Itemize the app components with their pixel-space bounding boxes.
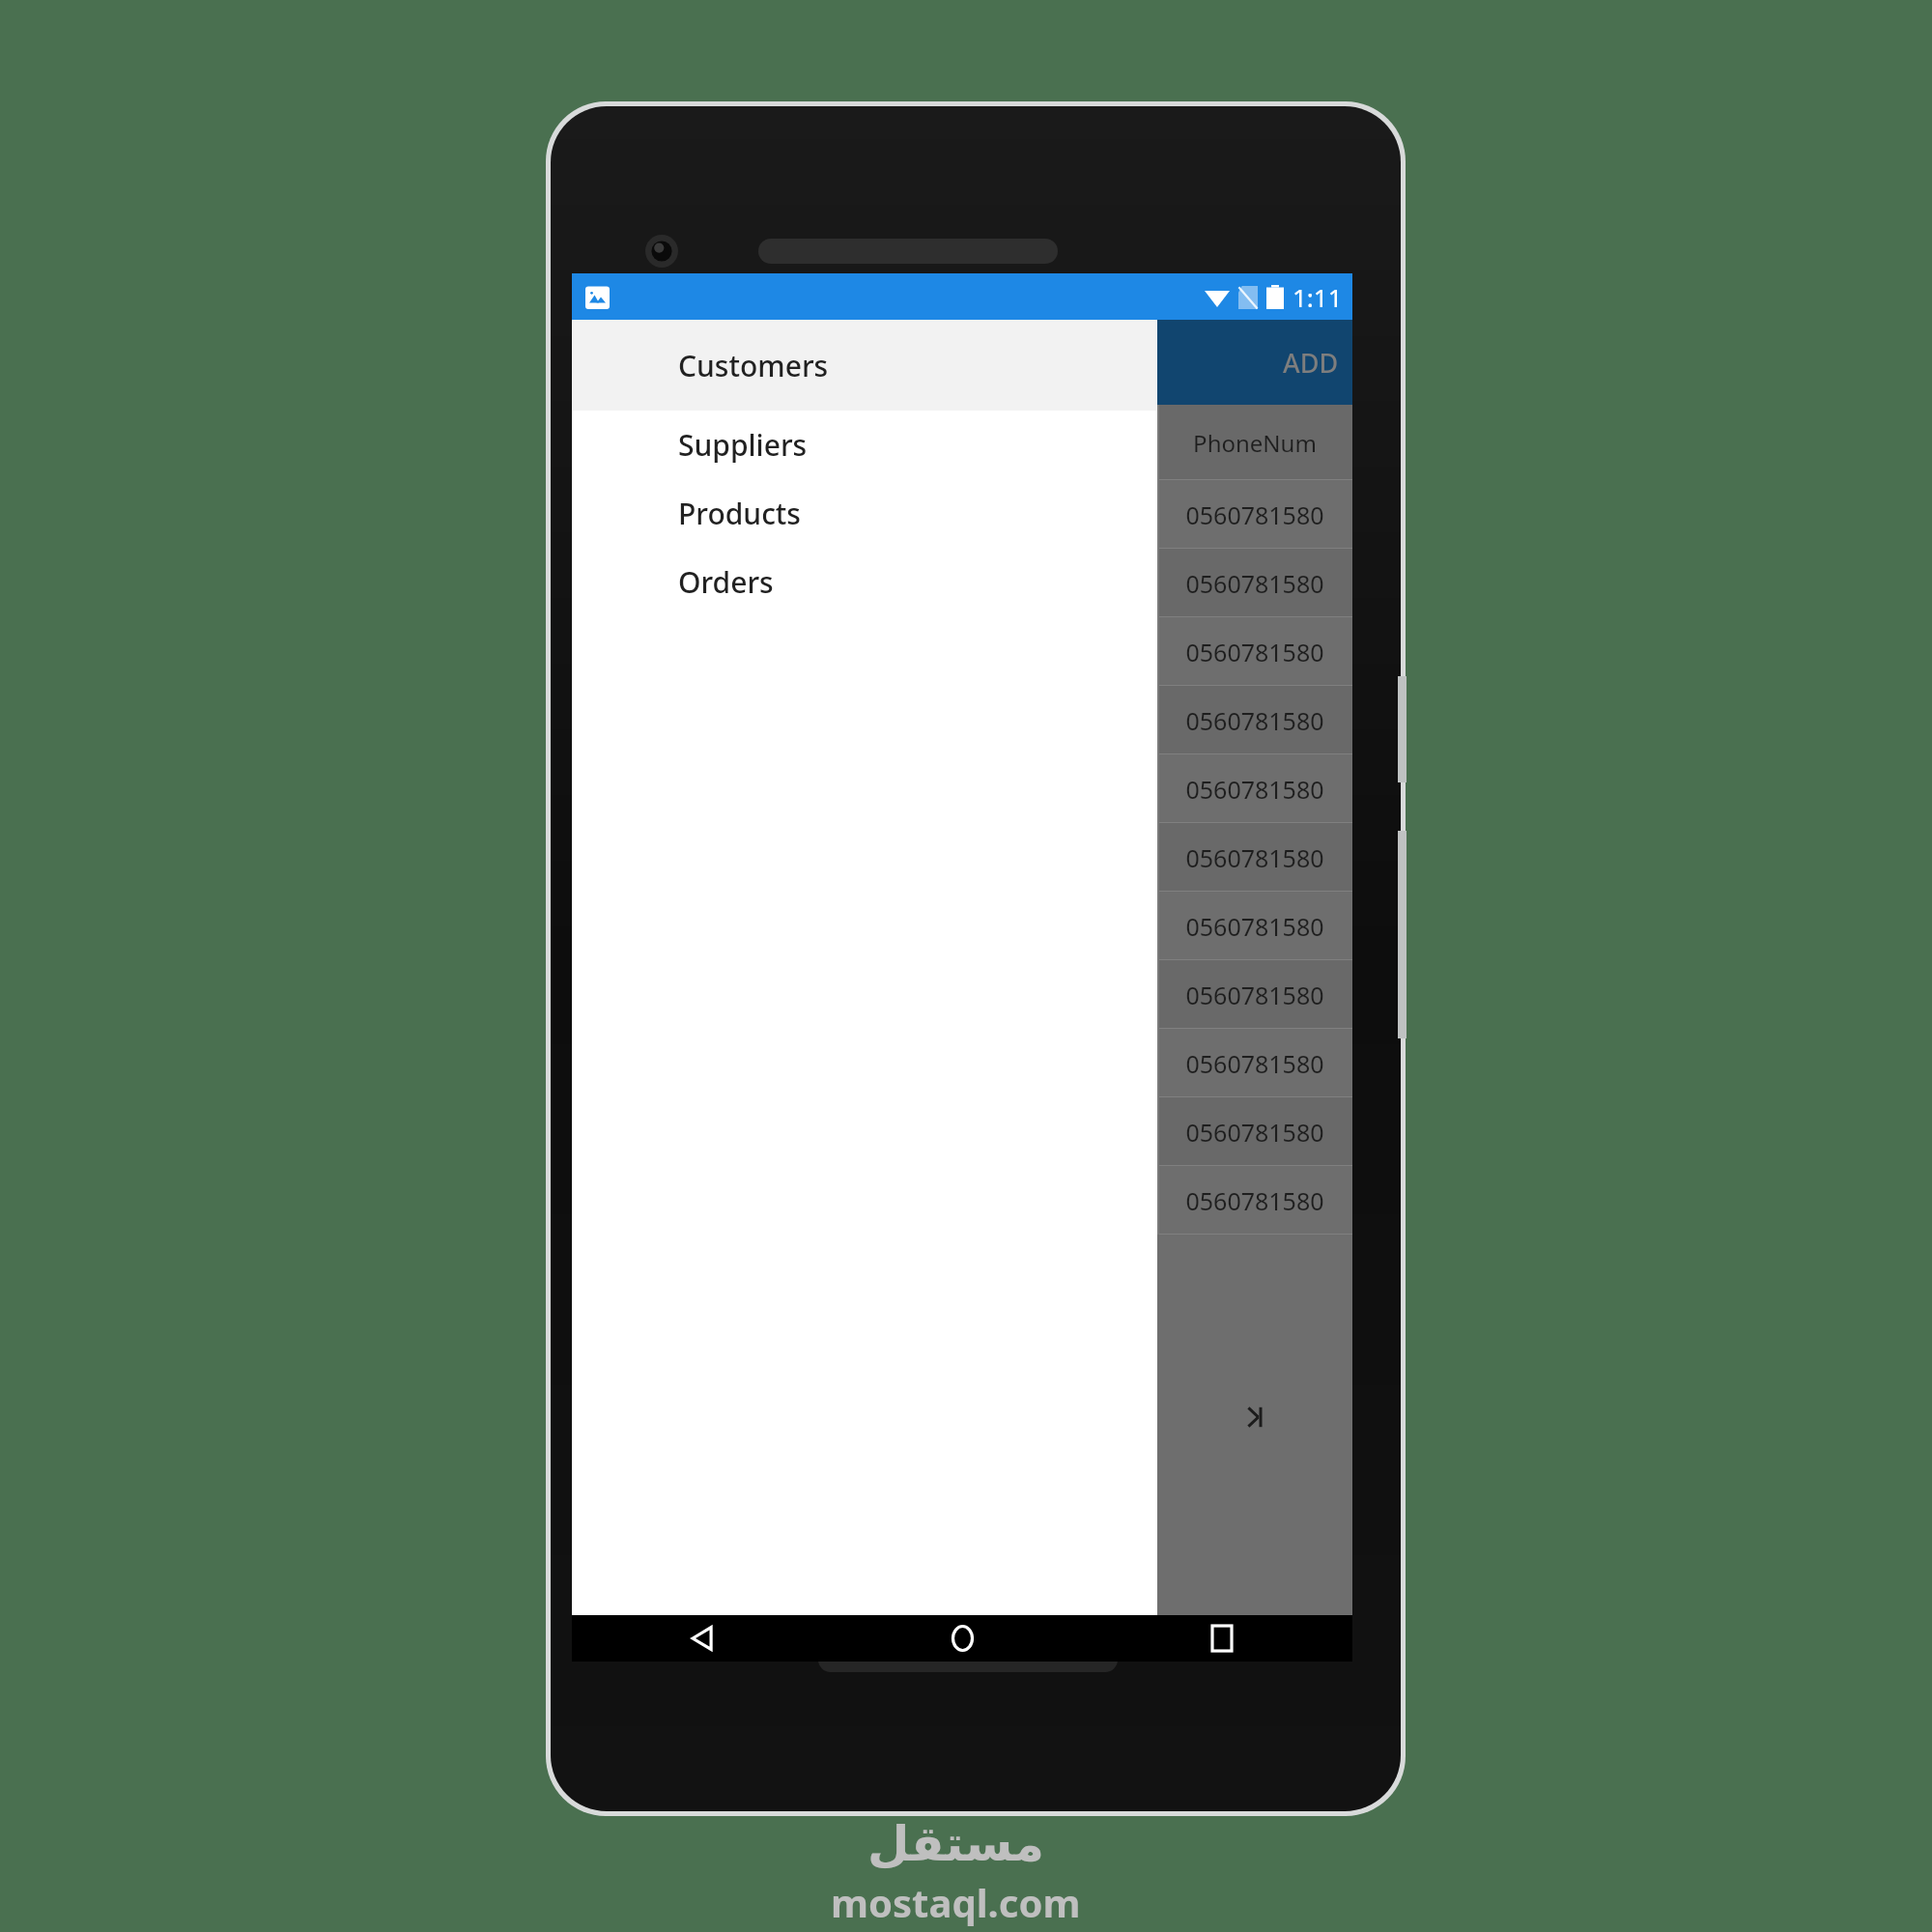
button[interactable]: Products	[572, 479, 1157, 548]
button[interactable]: 0560781580	[1157, 754, 1352, 823]
button[interactable]: Suppliers	[572, 411, 1157, 479]
button[interactable]: 0560781580	[1157, 1097, 1352, 1166]
button[interactable]: 0560781580	[1157, 617, 1352, 686]
staticText: 0560781580	[1185, 567, 1324, 600]
staticText: Orders	[678, 562, 774, 602]
button[interactable]: ADD	[1157, 320, 1352, 405]
staticText: 0560781580	[1185, 910, 1324, 943]
staticText: 0560781580	[1185, 979, 1324, 1011]
staticText: ADD	[1283, 345, 1339, 381]
button[interactable]: Home	[934, 1615, 990, 1662]
button[interactable]: 0560781580	[1157, 823, 1352, 892]
staticText: mostaql.com	[831, 1876, 1081, 1928]
staticText: Customers	[678, 346, 829, 385]
button[interactable]: Recent apps	[1194, 1615, 1250, 1662]
button[interactable]: Orders	[572, 548, 1157, 616]
staticText: 0560781580	[1185, 498, 1324, 531]
staticText: 1:11	[1293, 280, 1343, 314]
button[interactable]: 0560781580	[1157, 1029, 1352, 1097]
button[interactable]: 0560781580	[1157, 549, 1352, 617]
button[interactable]: Customers	[572, 320, 1157, 411]
staticText: Products	[678, 494, 801, 533]
button[interactable]: 0560781580	[1157, 480, 1352, 549]
button[interactable]: PhoneNum	[1157, 405, 1352, 480]
staticText: 0560781580	[1185, 773, 1324, 806]
staticText: 0560781580	[1185, 841, 1324, 874]
staticText: 0560781580	[1185, 1047, 1324, 1080]
button[interactable]: 0560781580	[1157, 1166, 1352, 1235]
staticText: 0560781580	[1185, 636, 1324, 668]
button[interactable]: 0560781580	[1157, 892, 1352, 960]
staticText: 0560781580	[1185, 1116, 1324, 1149]
staticText: 0560781580	[1185, 704, 1324, 737]
button[interactable]: Last page	[1157, 1235, 1352, 1615]
button[interactable]: 0560781580	[1157, 686, 1352, 754]
button[interactable]: 0560781580	[1157, 960, 1352, 1029]
staticText: 0560781580	[1185, 1184, 1324, 1217]
staticText: Suppliers	[678, 425, 808, 465]
staticText: PhoneNum	[1193, 427, 1317, 459]
staticText: مستقل	[867, 1816, 1044, 1872]
button[interactable]: Back	[674, 1615, 730, 1662]
